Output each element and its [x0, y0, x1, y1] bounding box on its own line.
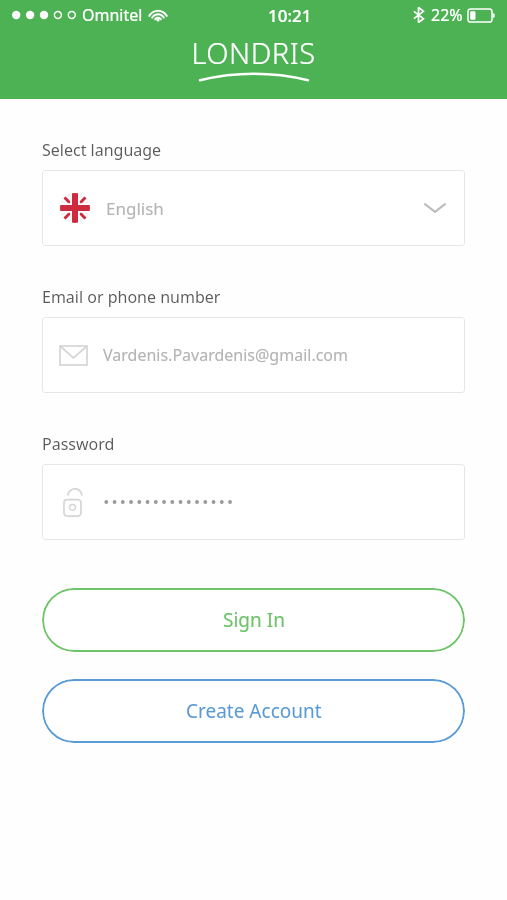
staticText: 22%	[431, 4, 463, 26]
staticText: Create Account	[186, 698, 322, 724]
button[interactable]: Vardenis.Pavardenis@gmail.com	[42, 317, 465, 393]
staticText: Vardenis.Pavardenis@gmail.com	[103, 344, 348, 366]
button[interactable]	[42, 464, 465, 540]
staticText: 10:21	[268, 4, 312, 27]
staticText: Select language	[42, 139, 162, 161]
button[interactable]: Create Account	[42, 679, 465, 743]
staticText: Sign In	[223, 607, 285, 633]
button[interactable]: Sign In	[42, 588, 465, 652]
staticText: Password	[42, 433, 115, 455]
button[interactable]: English	[42, 170, 465, 246]
staticText: Email or phone number	[42, 286, 221, 308]
staticText: Omnitel	[82, 4, 143, 26]
staticText: English	[106, 197, 164, 220]
other: Open language list	[425, 202, 445, 214]
staticText: LONDRIS	[191, 33, 316, 72]
